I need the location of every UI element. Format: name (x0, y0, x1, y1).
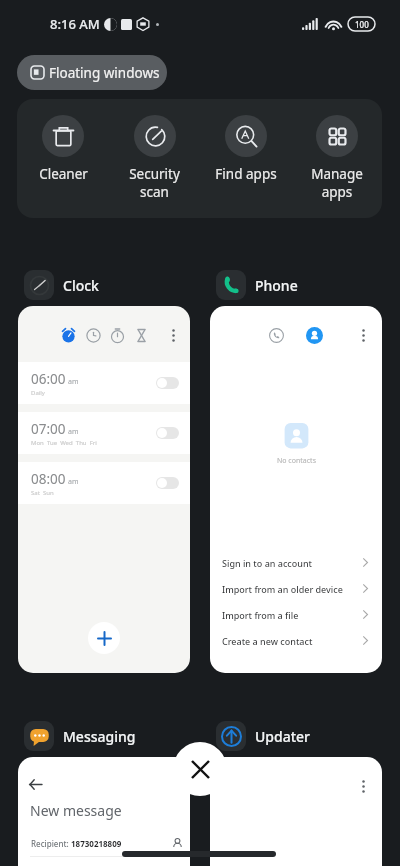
staticText: Messaging (63, 727, 136, 746)
button[interactable]: Close (173, 742, 227, 796)
button[interactable]: Create a new contact (210, 628, 382, 653)
button[interactable]: Clock (24, 270, 99, 300)
staticText: Daily (31, 389, 45, 397)
button[interactable]: Phone (216, 270, 298, 300)
button[interactable]: Import from a file (210, 602, 382, 627)
staticText: Find apps (215, 165, 277, 183)
staticText: 100 (355, 19, 369, 30)
staticText: No contacts (277, 456, 316, 466)
staticText: Sign in to an account (222, 557, 312, 569)
button[interactable]: Toggle alarm (156, 427, 179, 439)
staticText: Security scan (129, 165, 180, 201)
button[interactable]: Manage apps (291, 99, 382, 218)
staticText: am (68, 477, 79, 487)
staticText: Updater (255, 727, 311, 746)
staticText: Clock (63, 276, 99, 295)
staticText: Sat Sun (31, 489, 54, 497)
staticText: 06:00 (31, 370, 66, 388)
staticText: New message (30, 801, 122, 820)
button[interactable] (210, 757, 382, 866)
staticText: 07:00 (31, 420, 66, 438)
staticText: Phone (255, 276, 298, 295)
button[interactable]: 07:00 (18, 412, 190, 454)
button[interactable]: Cleaner (17, 99, 109, 218)
staticText: Import from a file (222, 609, 299, 621)
staticText: Recipient: (31, 838, 71, 849)
staticText: Create a new contact (222, 635, 313, 647)
staticText: am (68, 377, 79, 387)
button[interactable]: New message (18, 757, 190, 866)
button[interactable]: 08:00 (18, 462, 190, 504)
button[interactable]: Floating windows (17, 55, 167, 90)
button[interactable]: 06:00 (18, 362, 190, 404)
button[interactable]: Messaging (24, 721, 136, 751)
button[interactable]: Find apps (200, 99, 291, 218)
button[interactable]: Import from an older device (210, 576, 382, 601)
staticText: Manage apps (311, 165, 363, 201)
staticText: Cleaner (39, 165, 88, 183)
staticText: 8:16 AM (50, 15, 100, 33)
button[interactable]: Toggle alarm (156, 477, 179, 489)
staticText: 08:00 (31, 470, 66, 488)
staticText: Floating windows (49, 64, 160, 82)
button[interactable]: Sign in to an account (210, 550, 382, 575)
button[interactable]: Updater (216, 721, 311, 751)
button[interactable]: Contacts (306, 327, 323, 344)
staticText: 18730218809 (71, 838, 122, 849)
button[interactable]: 06:00 (18, 306, 190, 673)
staticText: Import from an older device (222, 583, 343, 595)
button[interactable]: Toggle alarm (156, 377, 179, 389)
staticText: Mon Tue Wed Thu Fri (31, 439, 97, 447)
staticText: am (68, 427, 79, 437)
button[interactable]: Contacts (210, 306, 382, 673)
button[interactable]: Add alarm (88, 622, 120, 654)
button[interactable]: Security scan (109, 99, 200, 218)
